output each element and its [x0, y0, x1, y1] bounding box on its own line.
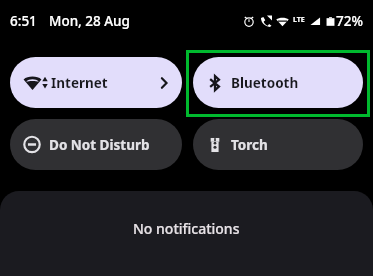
staticText: Torch: [231, 136, 268, 154]
staticText: Mon, 28 Aug: [49, 12, 130, 30]
button[interactable]: Torch: [193, 119, 363, 170]
button[interactable]: Bluetooth: [193, 57, 363, 108]
staticText: Bluetooth: [231, 74, 299, 92]
button[interactable]: Internet: [10, 57, 182, 108]
button[interactable]: Do Not Disturb: [10, 119, 182, 170]
staticText: 72%: [336, 12, 363, 30]
staticText: No notifications: [133, 219, 240, 238]
staticText: 6:51: [10, 12, 37, 30]
staticText: Internet: [51, 74, 108, 92]
staticText: LTE: [293, 15, 305, 25]
staticText: Do Not Disturb: [49, 136, 150, 154]
